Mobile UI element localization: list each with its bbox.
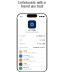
button[interactable]: Archive	[17, 58, 46, 62]
staticText: brand you trust	[21, 5, 43, 8]
staticText: Connect	[23, 54, 29, 56]
button[interactable]: Languages	[19, 46, 45, 49]
staticText: Write it down	[23, 64, 30, 66]
button[interactable]: Connect	[17, 54, 46, 58]
button[interactable]: Provider	[19, 34, 45, 38]
staticText: Productivity	[37, 43, 45, 45]
button[interactable]: Notes	[17, 62, 46, 66]
staticText: Notes	[23, 62, 27, 64]
staticText: Provider	[19, 35, 26, 37]
staticText: Sketch & prototype	[23, 52, 36, 54]
button[interactable]: Size	[19, 38, 45, 42]
staticText: Boards	[23, 66, 29, 68]
button[interactable]: Category	[19, 42, 45, 46]
staticText: Share with clients	[23, 56, 34, 58]
staticText: Category	[19, 43, 26, 45]
staticText: English & 12 more	[33, 46, 45, 48]
staticText: Northwind	[28, 29, 36, 31]
button[interactable]: Boards	[17, 66, 46, 70]
staticText: 124.6 MB	[39, 39, 45, 41]
staticText: Languages	[19, 46, 28, 48]
staticText: Northwind Ltd	[36, 35, 45, 37]
button[interactable]: Studio	[17, 50, 46, 54]
staticText: Collaborate with a	[18, 1, 46, 4]
staticText: Every file, synced	[23, 60, 36, 62]
staticText: Archive	[23, 58, 29, 60]
staticText: 9:41	[20, 16, 23, 17]
staticText: Studio	[23, 50, 27, 52]
staticText: Plan together	[23, 68, 32, 70]
staticText: Design tools for teams	[25, 31, 39, 33]
